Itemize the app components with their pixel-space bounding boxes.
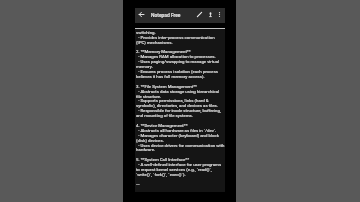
staticText: - Uses device drivers for communication …: [136, 143, 225, 148]
staticText: believes it has full memory access).: [136, 74, 205, 79]
button[interactable]: More options: [214, 8, 225, 23]
button[interactable]: switching.: [135, 28, 225, 192]
staticText: hardware.: [136, 147, 156, 152]
staticText: Notepad Free: [151, 12, 181, 18]
staticText: 3. **File System Management**: [136, 84, 197, 89]
staticText: (IPC) mechanisms.: [136, 40, 173, 45]
staticText: to request kernel services (e.g., `read(…: [136, 167, 212, 172]
staticText: - Abstracts data storage using hierarchi…: [136, 89, 220, 94]
button[interactable]: Back: [135, 8, 147, 23]
staticText: and mounting of file systems.: [136, 113, 193, 118]
staticText: 5. **System Call Interface**: [136, 157, 190, 162]
staticText: - Ensures process isolation (each proces…: [136, 69, 219, 74]
staticText: 4. **Device Management**: [136, 123, 188, 128]
staticText: memory.: [136, 64, 153, 69]
staticText: - Abstracts all hardware as files in `/d…: [136, 128, 217, 133]
button[interactable]: Voice input: [206, 8, 214, 23]
staticText: ---: [136, 182, 140, 187]
staticText: switching.: [136, 30, 156, 35]
staticText: - Manages RAM allocation to processes.: [136, 54, 216, 59]
staticText: - Supports permissions, links (hard &: [136, 98, 209, 103]
staticText: 2. **Memory Management**: [136, 49, 191, 54]
button[interactable]: Edit: [192, 8, 206, 23]
staticText: - Provides inter-process communication: [136, 35, 215, 40]
staticText: - A well-defined interface for user prog…: [136, 162, 222, 167]
staticText: - Uses paging/swapping to manage virtual: [136, 59, 220, 64]
staticText: - Manages character (keyboard) and block: [136, 133, 219, 138]
staticText: symbolic), directories, and devices as f…: [136, 103, 218, 108]
staticText: `write()`, `fork()`, `exec()`).: [136, 172, 186, 177]
staticText: - Responsible for inode structure, buffe…: [136, 108, 221, 113]
staticText: file structure.: [136, 94, 162, 99]
staticText: (disk) devices.: [136, 138, 164, 143]
